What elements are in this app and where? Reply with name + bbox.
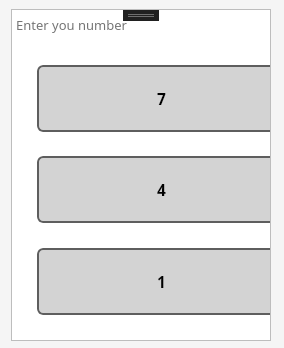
staticText: 1 xyxy=(157,271,166,292)
staticText: Enter you number xyxy=(16,16,127,34)
button[interactable]: 4 xyxy=(37,156,271,223)
other: Speaker xyxy=(123,10,159,21)
staticText: 7 xyxy=(157,88,166,109)
staticText: 4 xyxy=(157,179,166,200)
button[interactable]: 1 xyxy=(37,248,271,315)
button[interactable]: Enter you number xyxy=(11,9,271,58)
button[interactable]: 7 xyxy=(37,65,271,132)
